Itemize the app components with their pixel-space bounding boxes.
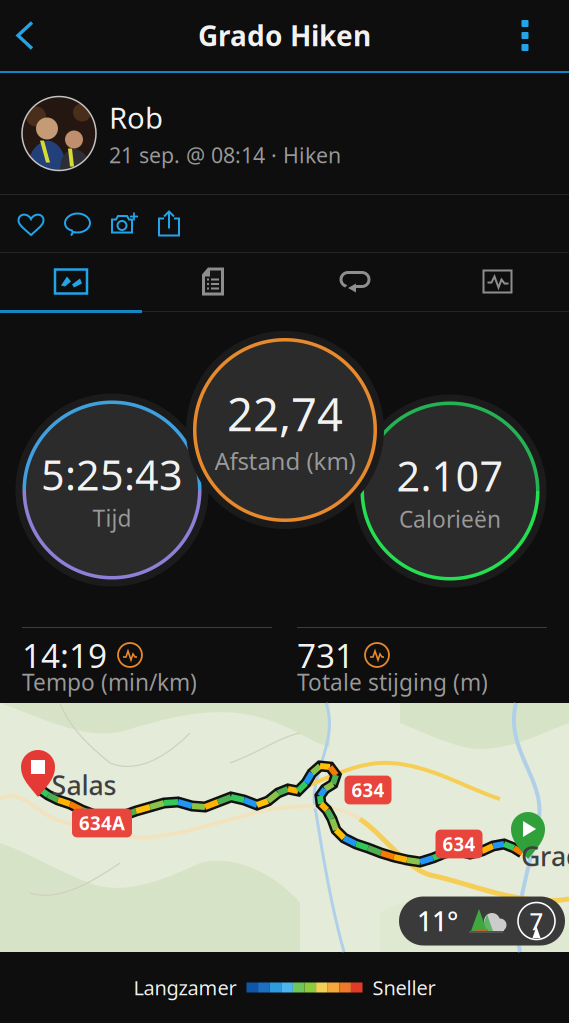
staticText: 22,74 xyxy=(227,383,343,444)
button[interactable]: Add photo xyxy=(100,195,146,252)
button[interactable]: Like xyxy=(8,195,54,252)
button[interactable]: Comment xyxy=(54,195,100,252)
button[interactable]: Charts xyxy=(426,253,569,310)
staticText: Grado Hiken xyxy=(198,17,371,54)
staticText: Langzamer xyxy=(133,974,236,1001)
staticText: 11° xyxy=(417,903,458,939)
button[interactable]: More options xyxy=(481,0,569,71)
staticText: 731 xyxy=(297,633,354,677)
button[interactable]: Share xyxy=(146,195,192,252)
staticText: 634 xyxy=(351,778,384,802)
staticText: 2.107 xyxy=(396,448,503,503)
button[interactable]: Map xyxy=(0,253,142,310)
staticText: 7 xyxy=(529,905,543,937)
staticText: Totale stijging (m) xyxy=(297,667,488,697)
staticText: Calorieën xyxy=(399,504,501,534)
staticText: Rob xyxy=(109,98,163,137)
button[interactable]: Back xyxy=(0,0,50,71)
staticText: 634 xyxy=(442,832,475,856)
staticText: Sneller xyxy=(372,974,435,1001)
staticText: 14:19 xyxy=(22,633,107,677)
button[interactable]: Laps xyxy=(284,253,426,310)
staticText: Afstand (km) xyxy=(214,445,355,477)
button[interactable]: Details xyxy=(142,253,284,310)
staticText: 634A xyxy=(79,811,125,835)
staticText: Grad xyxy=(521,838,569,874)
staticText: Tijd xyxy=(92,503,131,533)
staticText: Tempo (min/km) xyxy=(22,667,197,697)
staticText: 21 sep. @ 08:14 · Hiken xyxy=(109,141,341,169)
staticText: 5:25:43 xyxy=(41,447,183,502)
staticText: Salas xyxy=(51,767,116,803)
